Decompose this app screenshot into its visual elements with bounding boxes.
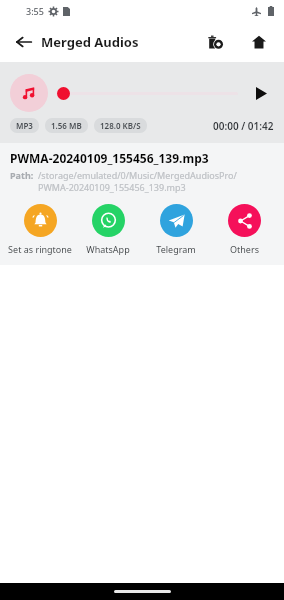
button[interactable]: Set as ringtone — [6, 204, 74, 255]
staticText: 3:55 — [26, 5, 44, 17]
staticText: WhatsApp — [86, 243, 130, 255]
staticText: /storage/emulated/0/Music/MergedAudiosPr… — [38, 169, 237, 194]
staticText: Others — [230, 243, 259, 255]
staticText: 1.56 MB — [51, 120, 82, 131]
staticText: Set as ringtone — [8, 243, 72, 255]
button[interactable]: Telegram — [142, 204, 210, 255]
staticText: MP3 — [16, 120, 33, 131]
button[interactable]: Back — [8, 26, 40, 58]
button[interactable] — [56, 83, 238, 103]
button[interactable]: WhatsApp — [74, 204, 142, 255]
button[interactable]: Home — [244, 27, 274, 57]
button[interactable]: Play — [248, 80, 274, 106]
staticText: Telegram — [156, 243, 196, 255]
staticText: Merged Audios — [41, 33, 139, 51]
staticText: 128.0 KB/S — [100, 120, 141, 131]
staticText: PWMA-20240109_155456_139.mp3 — [10, 150, 209, 166]
button[interactable]: Others — [210, 204, 278, 255]
staticText: Path: — [10, 169, 34, 181]
button[interactable]: Recently deleted — [200, 27, 230, 57]
staticText: 00:00 / 01:42 — [213, 119, 274, 133]
